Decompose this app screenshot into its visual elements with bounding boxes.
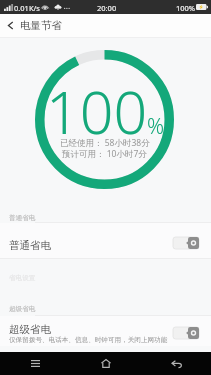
staticText: 100% [176,3,196,13]
staticText: 普通省电 [9,239,51,252]
staticText: 已经使用： 58小时38分 [60,137,150,149]
button[interactable]: Back [0,14,20,37]
button[interactable]: Back [141,352,211,375]
staticText: 超级省电 [9,305,36,313]
button[interactable]: Home [71,352,141,375]
staticText: 超级省电 [9,323,51,336]
button[interactable]: Toggle [173,237,199,249]
button[interactable] [0,223,211,258]
staticText: 100 [46,71,148,151]
staticText: 20:00 [97,3,117,13]
staticText: 电量节省 [20,19,62,32]
staticText: % [147,112,165,141]
button[interactable]: Toggle [173,327,199,339]
staticText: 仅保留拨号、电话本、信息、时钟可用，关闭上网功能 [9,336,168,344]
staticText: 0.01K/s [14,3,40,13]
staticText: 预计可用： 10小时7分 [62,148,147,160]
staticText: 省电设置 [9,274,36,282]
button[interactable]: Menu [0,352,71,375]
staticText: 普通省电 [9,214,36,222]
button[interactable] [0,316,211,346]
